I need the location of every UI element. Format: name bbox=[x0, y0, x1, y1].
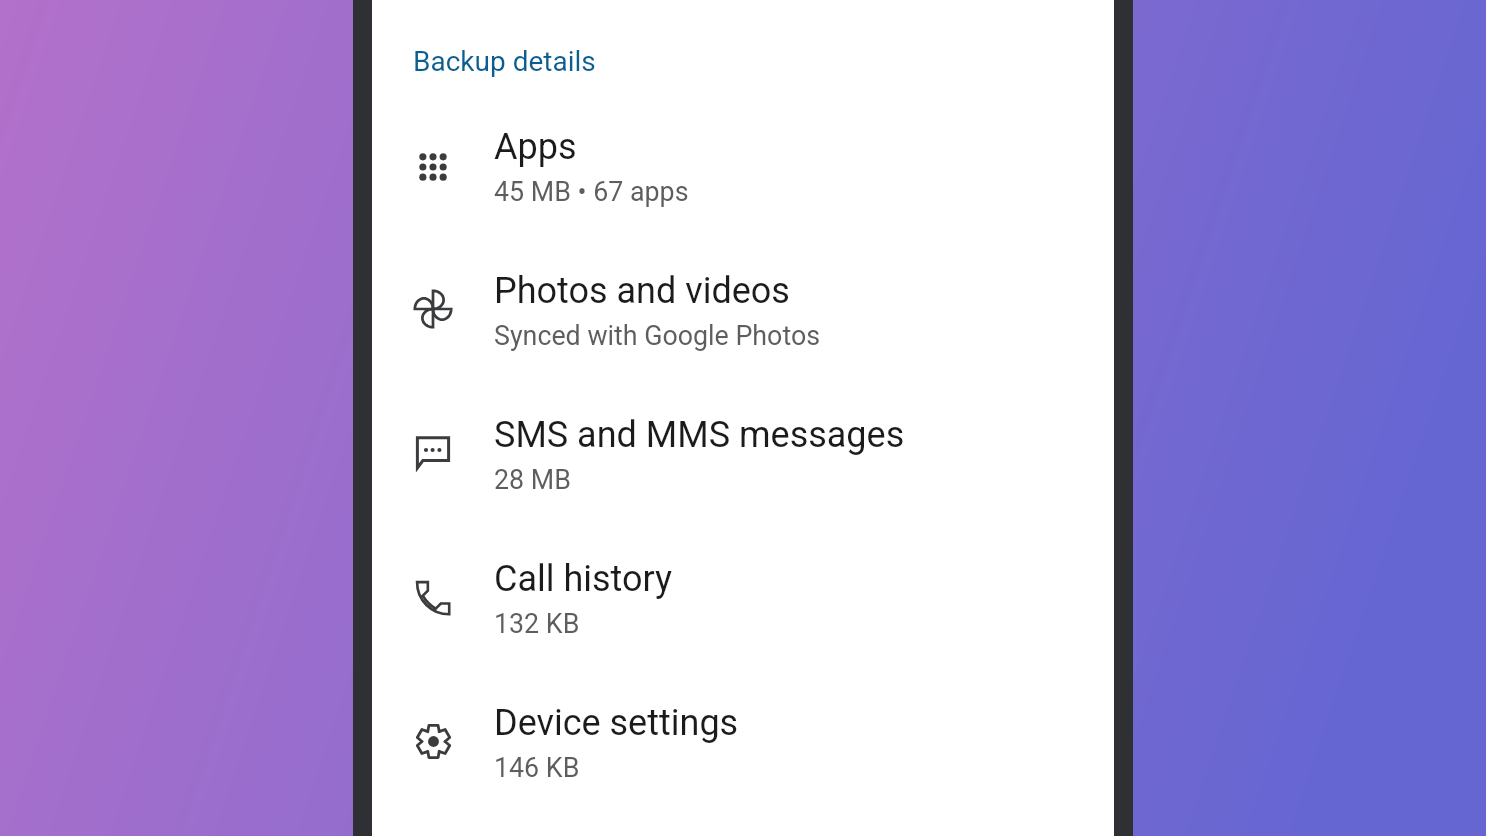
staticText: Device settings bbox=[494, 702, 739, 744]
button[interactable]: Device settings bbox=[372, 669, 1114, 813]
staticText: 132 KB bbox=[494, 608, 580, 639]
other: Device settings bbox=[372, 723, 494, 760]
button[interactable]: Photos and videos bbox=[372, 237, 1114, 381]
staticText: Photos and videos bbox=[494, 270, 790, 312]
button[interactable]: SMS and MMS messages bbox=[372, 381, 1114, 525]
staticText: 45 MB • 67 apps bbox=[494, 176, 689, 207]
button[interactable]: Apps bbox=[372, 93, 1114, 237]
staticText: Synced with Google Photos bbox=[494, 320, 821, 351]
other: SMS and MMS messages bbox=[372, 435, 494, 471]
staticText: 146 KB bbox=[494, 752, 580, 783]
button[interactable]: Call history bbox=[372, 525, 1114, 669]
other: Apps bbox=[372, 151, 494, 179]
staticText: Apps bbox=[494, 126, 577, 168]
other: Photos and videos bbox=[372, 290, 494, 328]
staticText: 28 MB bbox=[494, 464, 571, 495]
other: Call history bbox=[372, 580, 494, 615]
staticText: Backup details bbox=[413, 45, 596, 78]
staticText: Call history bbox=[494, 558, 673, 600]
staticText: SMS and MMS messages bbox=[494, 414, 905, 456]
